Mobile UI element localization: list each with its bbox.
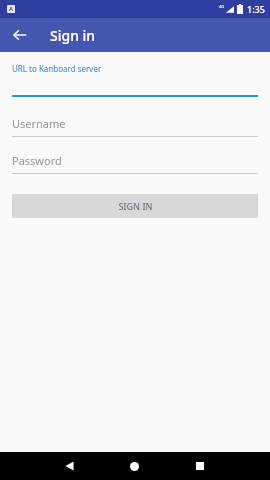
button[interactable]: Back <box>38 452 102 480</box>
button[interactable]: Password <box>0 153 270 174</box>
staticText: Username <box>12 116 66 131</box>
staticText: URL to Kanboard server <box>12 63 102 74</box>
button[interactable]: Username <box>0 116 270 137</box>
button[interactable]: Recent apps <box>167 452 232 480</box>
staticText: Sign in <box>50 26 96 45</box>
staticText: A <box>9 5 14 13</box>
button[interactable]: SIGN IN <box>12 194 258 218</box>
button[interactable]: Back <box>8 23 32 47</box>
button[interactable]: URL to Kanboard server <box>0 63 270 97</box>
staticText: 4G <box>219 4 225 9</box>
staticText: Password <box>12 153 62 168</box>
staticText: 1:35 <box>247 3 265 15</box>
button[interactable]: Home <box>102 452 167 480</box>
staticText: SIGN IN <box>118 200 153 212</box>
